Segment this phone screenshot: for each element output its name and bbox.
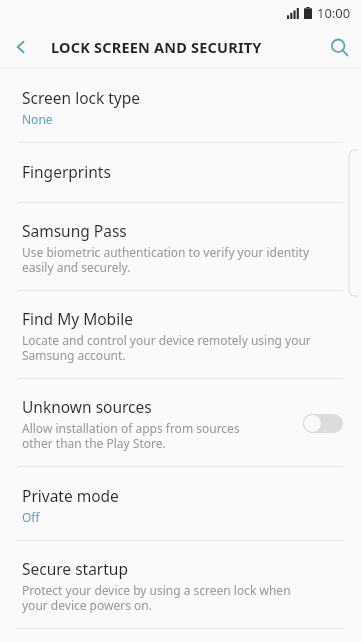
staticText: Use biometric authentication to verify y…: [22, 244, 310, 275]
button[interactable]: Find My Mobile: [0, 291, 361, 378]
staticText: Fingerprints: [22, 161, 111, 182]
button[interactable]: Fingerprints: [0, 143, 361, 202]
staticText: LOCK SCREEN AND SECURITY: [51, 37, 317, 57]
button[interactable]: Screen lock type: [0, 69, 361, 142]
staticText: Screen lock type: [22, 87, 141, 108]
staticText: Unknown sources: [22, 396, 152, 417]
staticText: Protect your device by using a screen lo…: [22, 582, 291, 613]
staticText: Find My Mobile: [22, 308, 133, 329]
button[interactable]: Unknown sources: [0, 379, 361, 466]
button[interactable]: Back: [0, 26, 42, 68]
staticText: Off: [22, 509, 40, 525]
staticText: None: [22, 111, 53, 127]
staticText: Samsung Pass: [22, 220, 127, 241]
button[interactable]: Private mode: [0, 467, 361, 540]
staticText: Allow installation of apps from sources …: [22, 420, 240, 451]
button[interactable]: Unknown sources toggle: [303, 414, 343, 433]
staticText: Secure startup: [22, 558, 128, 579]
button[interactable]: Search: [317, 26, 361, 68]
button[interactable]: Samsung Pass: [0, 203, 361, 290]
staticText: 10:00: [317, 4, 351, 22]
staticText: Private mode: [22, 485, 119, 506]
button[interactable]: Secure startup: [0, 541, 361, 628]
staticText: Locate and control your device remotely …: [22, 332, 311, 363]
